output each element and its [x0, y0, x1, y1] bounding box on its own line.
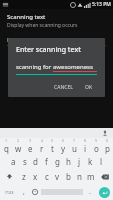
- button[interactable]: Shift: [0, 169, 18, 184]
- button[interactable]: Found text: [7, 36, 106, 46]
- staticText: Found text: [7, 36, 38, 44]
- button[interactable]: a: [7, 154, 19, 169]
- button[interactable]: s: [19, 154, 30, 169]
- button[interactable]: n: [74, 169, 85, 184]
- staticText: ?123: [5, 190, 14, 195]
- button[interactable]: OK: [81, 82, 97, 93]
- button[interactable]: 1: [0, 138, 12, 154]
- staticText: y: [61, 143, 66, 154]
- button[interactable]: ?123: [0, 184, 18, 200]
- staticText: 0: [106, 138, 109, 143]
- button[interactable]: g: [52, 154, 63, 169]
- button[interactable]: Voice input: [101, 129, 109, 137]
- staticText: p: [105, 143, 110, 154]
- button[interactable]: Enter: [99, 187, 110, 198]
- staticText: 7: [73, 138, 76, 143]
- button[interactable]: .: [84, 184, 95, 200]
- button[interactable]: f: [41, 154, 52, 169]
- staticText: b: [66, 171, 71, 182]
- staticText: 4: [41, 138, 44, 143]
- staticText: h: [66, 156, 71, 167]
- staticText: q: [4, 143, 9, 154]
- staticText: k: [88, 156, 93, 167]
- button[interactable]: v: [52, 169, 63, 184]
- staticText: 5: [51, 138, 54, 143]
- staticText: 2: [17, 138, 20, 143]
- staticText: v: [55, 171, 60, 182]
- button[interactable]: x: [30, 169, 41, 184]
- staticText: 6: [62, 138, 65, 143]
- staticText: 3: [29, 138, 32, 143]
- button[interactable]: 3: [24, 138, 36, 154]
- button[interactable]: b: [63, 169, 74, 184]
- button[interactable]: l: [96, 154, 107, 169]
- button[interactable]: z: [18, 169, 30, 184]
- button[interactable]: 0: [102, 138, 113, 154]
- staticText: i: [84, 143, 87, 154]
- staticText: t: [51, 143, 54, 154]
- button[interactable]: c: [41, 169, 52, 184]
- button[interactable]: scanning for: [16, 63, 97, 75]
- button[interactable]: m: [85, 169, 96, 184]
- staticText: a: [11, 156, 16, 167]
- button[interactable]: 5: [47, 138, 58, 154]
- staticText: 9: [95, 138, 98, 143]
- button[interactable]: d: [30, 154, 41, 169]
- staticText: u: [72, 143, 77, 154]
- staticText: g: [55, 156, 60, 167]
- button[interactable]: 7: [69, 138, 80, 154]
- staticText: scanning for: [16, 63, 53, 71]
- button[interactable]: Backspace: [96, 169, 113, 184]
- staticText: l: [100, 156, 103, 167]
- staticText: 1: [5, 138, 8, 143]
- staticText: Display when scanning occurs: [7, 22, 78, 29]
- staticText: f: [45, 156, 48, 167]
- staticText: .: [89, 187, 91, 197]
- button[interactable]: ,: [18, 184, 29, 200]
- staticText: OK: [85, 84, 93, 91]
- staticText: c: [45, 171, 49, 182]
- staticText: s: [23, 156, 27, 167]
- staticText: Scanning text: [7, 13, 46, 21]
- staticText: z: [22, 171, 26, 182]
- button[interactable]: CANCEL: [50, 82, 77, 93]
- staticText: n: [77, 171, 82, 182]
- button[interactable]: h: [63, 154, 74, 169]
- staticText: 8: [84, 138, 87, 143]
- staticText: r: [40, 143, 44, 154]
- button[interactable]: 6: [58, 138, 69, 154]
- button[interactable]: j: [74, 154, 85, 169]
- staticText: awesomeness: [53, 63, 93, 71]
- staticText: Enter scanning text: [16, 45, 81, 55]
- staticText: o: [94, 143, 99, 154]
- staticText: w: [15, 143, 22, 154]
- staticText: ,: [23, 187, 25, 197]
- button[interactable]: 8: [80, 138, 91, 154]
- staticText: x: [33, 171, 38, 182]
- staticText: j: [78, 156, 81, 167]
- staticText: m: [87, 171, 95, 182]
- button[interactable]: Emoji: [29, 184, 40, 200]
- button[interactable]: 4: [36, 138, 47, 154]
- staticText: 5:13 PM: [92, 1, 111, 8]
- staticText: e: [28, 143, 33, 154]
- button[interactable]: 9: [91, 138, 102, 154]
- button[interactable]: 2: [12, 138, 24, 154]
- staticText: d: [33, 156, 38, 167]
- staticText: CANCEL: [54, 84, 73, 91]
- button[interactable]: k: [85, 154, 96, 169]
- button[interactable]: Scanning text: [7, 13, 106, 29]
